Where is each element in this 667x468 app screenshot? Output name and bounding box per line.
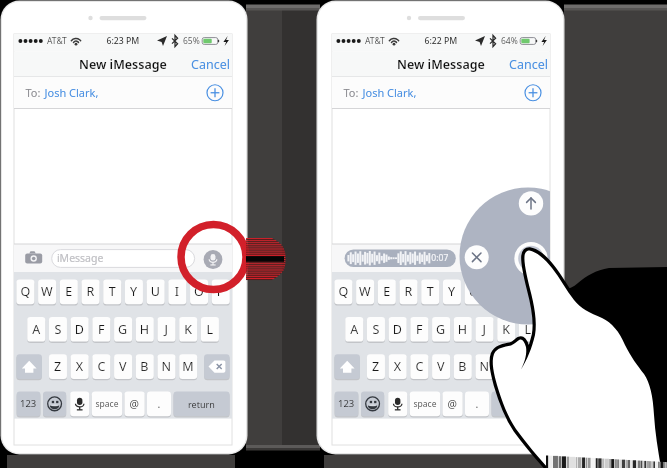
button[interactable]: iMessage audio message tutorial	[0, 0, 667, 468]
